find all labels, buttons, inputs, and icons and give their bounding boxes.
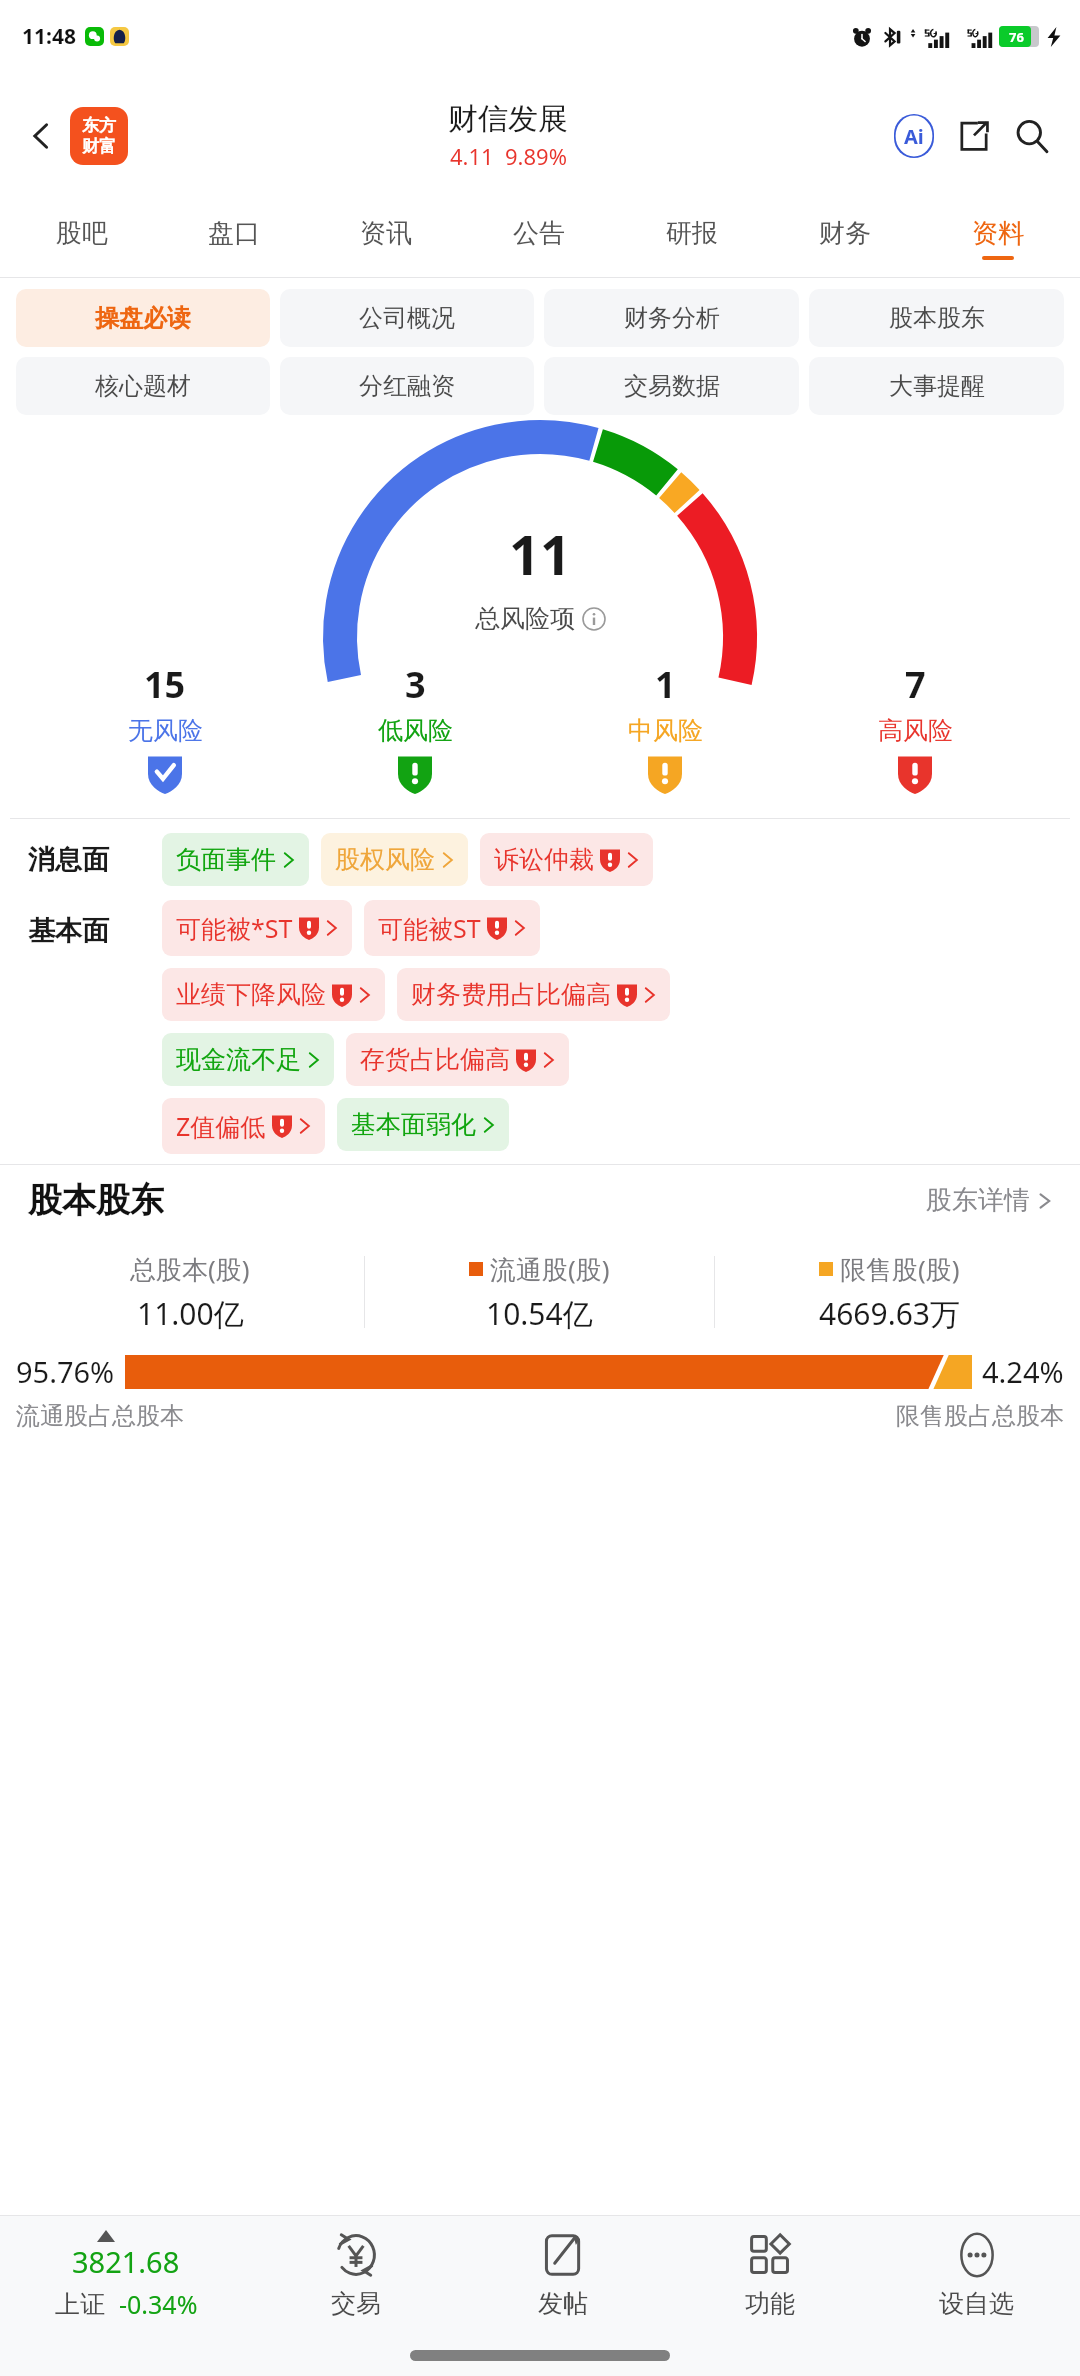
button[interactable]: East Money: [70, 107, 128, 165]
staticText: 股权风险: [335, 844, 435, 875]
staticText: 4.11: [450, 141, 494, 171]
staticText: 操盘必读: [95, 303, 191, 333]
staticText: 财务: [819, 217, 871, 250]
staticText: -0.34%: [119, 2287, 198, 2321]
staticText: 低风险: [378, 715, 453, 746]
button[interactable]: 3: [290, 660, 540, 794]
staticText: 15: [144, 660, 186, 709]
button[interactable]: 基本面弱化: [337, 1098, 509, 1151]
staticText: 核心题材: [95, 371, 191, 401]
staticText: 限售股(股): [840, 1251, 960, 1287]
button[interactable]: Share: [948, 110, 1000, 162]
button[interactable]: AI: [888, 110, 940, 162]
staticText: 存货占比偏高: [360, 1044, 510, 1075]
staticText: 7: [905, 660, 926, 709]
button[interactable]: Info: [582, 607, 606, 631]
button[interactable]: Z值偏低: [162, 1098, 325, 1154]
staticText: 无风险: [128, 715, 203, 746]
button[interactable]: Back: [14, 109, 68, 163]
button[interactable]: 存货占比偏高: [346, 1033, 569, 1086]
staticText: 76: [1009, 28, 1024, 46]
button[interactable]: 大事提醒: [809, 357, 1064, 415]
staticText: 95.76%: [16, 1352, 115, 1391]
button[interactable]: 限售股(股): [715, 1251, 1064, 1334]
button[interactable]: 股本股东: [809, 289, 1064, 347]
button[interactable]: 交易: [252, 2216, 459, 2334]
button[interactable]: 公司概况: [280, 289, 534, 347]
staticText: 现金流不足: [176, 1044, 301, 1075]
staticText: 4.24%: [982, 1352, 1064, 1391]
staticText: 基本面弱化: [351, 1109, 476, 1140]
staticText: 股本股东: [889, 303, 985, 333]
staticText: 4669.63万: [819, 1293, 960, 1334]
button[interactable]: 现金流不足: [162, 1033, 334, 1086]
button[interactable]: 财务分析: [544, 289, 799, 347]
staticText: 交易: [331, 2288, 381, 2319]
staticText: Z值偏低: [176, 1109, 266, 1143]
staticText: 流通股占总股本: [16, 1401, 184, 1431]
button[interactable]: 研报: [615, 198, 768, 278]
button[interactable]: 流通股(股): [365, 1251, 714, 1334]
staticText: 10.54亿: [486, 1293, 593, 1334]
button[interactable]: 财务: [768, 198, 921, 278]
staticText: 可能被*ST: [176, 911, 293, 945]
button[interactable]: 股东详情: [926, 1184, 1052, 1217]
staticText: 设自选: [939, 2288, 1014, 2319]
button[interactable]: 发帖: [459, 2216, 666, 2334]
staticText: 资讯: [360, 217, 412, 250]
staticText: 基本面: [28, 914, 148, 948]
staticText: 业绩下降风险: [176, 979, 326, 1010]
staticText: 公司概况: [359, 303, 455, 333]
staticText: 股吧: [56, 217, 108, 250]
button[interactable]: 资料: [921, 198, 1074, 278]
button[interactable]: 交易数据: [544, 357, 799, 415]
button[interactable]: 盘口: [158, 198, 310, 278]
button[interactable]: 设自选: [873, 2216, 1080, 2334]
button[interactable]: 15: [40, 660, 290, 794]
staticText: 交易数据: [624, 371, 720, 401]
staticText: 诉讼仲裁: [494, 844, 594, 875]
staticText: 总股本(股): [130, 1251, 250, 1287]
button[interactable]: 3821.68: [0, 2216, 252, 2334]
staticText: 资料: [972, 217, 1024, 250]
staticText: 股本股东: [28, 1179, 164, 1222]
button[interactable]: 业绩下降风险: [162, 968, 385, 1021]
button[interactable]: 股吧: [6, 198, 158, 278]
button[interactable]: 总股本(股): [16, 1251, 364, 1334]
staticText: 研报: [666, 217, 718, 250]
button[interactable]: 分红融资: [280, 357, 534, 415]
staticText: 9.89%: [505, 141, 567, 171]
staticText: 3: [405, 660, 426, 709]
staticText: 公告: [513, 217, 565, 250]
button[interactable]: 公告: [462, 198, 615, 278]
button[interactable]: 可能被*ST: [162, 900, 352, 956]
staticText: 流通股(股): [490, 1251, 610, 1287]
staticText: 中风险: [628, 715, 703, 746]
button[interactable]: 负面事件: [162, 833, 309, 886]
staticText: 分红融资: [359, 371, 455, 401]
button[interactable]: 7: [790, 660, 1040, 794]
staticText: 财信发展: [448, 100, 568, 138]
button[interactable]: 资讯: [310, 198, 462, 278]
staticText: 股东详情: [926, 1184, 1030, 1217]
staticText: 财务费用占比偏高: [411, 979, 611, 1010]
staticText: 负面事件: [176, 844, 276, 875]
button[interactable]: Search: [1006, 110, 1058, 162]
button[interactable]: 核心题材: [16, 357, 270, 415]
staticText: 财富: [82, 136, 116, 157]
staticText: 总风险项: [475, 603, 575, 634]
button[interactable]: 1: [540, 660, 790, 794]
button[interactable]: 诉讼仲裁: [480, 833, 653, 886]
button[interactable]: 可能被ST: [364, 900, 540, 956]
staticText: 11: [509, 517, 571, 591]
staticText: 财务分析: [624, 303, 720, 333]
staticText: 大事提醒: [889, 371, 985, 401]
staticText: 上证: [55, 2289, 105, 2320]
button[interactable]: 操盘必读: [16, 289, 270, 347]
button[interactable]: 财务费用占比偏高: [397, 968, 670, 1021]
staticText: 功能: [745, 2288, 795, 2319]
staticText: Ai: [904, 123, 924, 150]
button[interactable]: 功能: [666, 2216, 873, 2334]
staticText: 高风险: [878, 715, 953, 746]
button[interactable]: 股权风险: [321, 833, 468, 886]
